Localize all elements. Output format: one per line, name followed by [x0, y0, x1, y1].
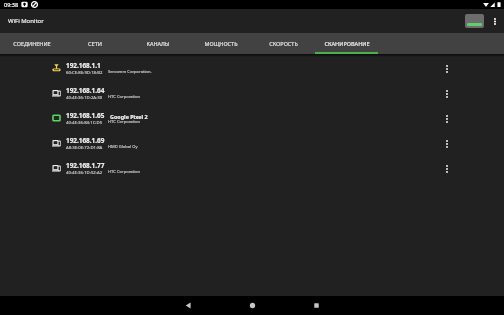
staticText: 09:38	[4, 1, 19, 8]
staticText: СЕТИ	[88, 40, 102, 47]
button[interactable]: КАНАЛЫ	[126, 33, 189, 54]
staticText: HTC Corporation	[108, 94, 141, 100]
button[interactable]: Device options	[440, 133, 454, 155]
staticText: A8:3E:0E:72:D1:8A	[66, 144, 103, 150]
button[interactable]: Signal level	[462, 10, 486, 32]
button[interactable]: More options	[486, 10, 504, 32]
staticText: Sercomm Corporation.	[108, 69, 152, 75]
staticText: 192.168.1.65	[66, 111, 105, 120]
button[interactable]: СЕТИ	[63, 33, 126, 54]
button[interactable]: Device options	[440, 83, 454, 105]
staticText: 60:CE:86:9D:18:B2	[66, 69, 103, 75]
staticText: 192.168.1.64	[66, 86, 105, 95]
staticText: 192.168.1.77	[66, 161, 105, 170]
staticText: 192.168.1.1	[66, 61, 101, 70]
button[interactable]: Device options	[440, 108, 454, 130]
staticText: 40:4E:36:1D:2A:30	[66, 94, 103, 100]
staticText: 192.168.1.69	[66, 136, 105, 145]
button[interactable]: СКАНИРОВАНИЕ	[315, 33, 378, 54]
staticText: 40:4E:36:84:1C:D5	[66, 119, 103, 125]
staticText: КАНАЛЫ	[146, 40, 170, 47]
staticText: СОЕДИНЕНИЕ	[13, 40, 51, 47]
staticText: HTC Corporation	[108, 169, 141, 175]
button[interactable]: СОЕДИНЕНИЕ	[0, 33, 63, 54]
staticText: 40:4E:36:1D:52:A2	[66, 169, 103, 175]
staticText: Google Pixel 2	[110, 113, 148, 120]
button[interactable]: 192.168.1.64	[52, 81, 454, 106]
button[interactable]: СКОРОСТЬ	[252, 33, 315, 54]
button[interactable]: МОЩНОСТЬ	[189, 33, 252, 54]
staticText: HTC Corporation	[108, 119, 141, 125]
button[interactable]: 192.168.1.1	[52, 56, 454, 81]
button[interactable]: 192.168.1.65	[52, 106, 454, 131]
staticText: СКОРОСТЬ	[269, 40, 298, 47]
staticText: HMD Global Oy	[108, 144, 138, 150]
button[interactable]: Device options	[440, 58, 454, 80]
button[interactable]: 192.168.1.69	[52, 131, 454, 156]
button[interactable]: Back	[156, 296, 220, 315]
button[interactable]: Device options	[440, 158, 454, 180]
staticText: WiFi Monitor	[8, 17, 44, 25]
staticText: СКАНИРОВАНИЕ	[324, 40, 370, 47]
button[interactable]: Recents	[284, 296, 348, 315]
staticText: МОЩНОСТЬ	[204, 40, 238, 47]
button[interactable]: Home	[220, 296, 284, 315]
button[interactable]: 192.168.1.77	[52, 156, 454, 181]
